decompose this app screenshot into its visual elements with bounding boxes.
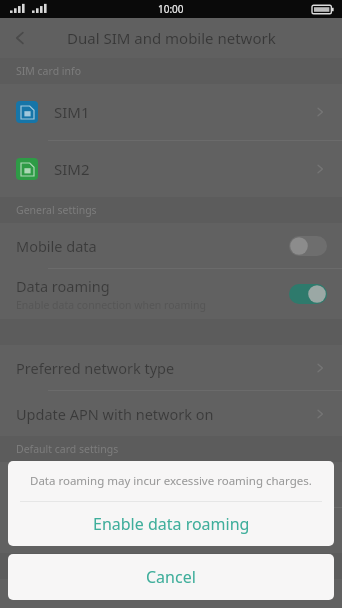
staticText: Ask before dialing (204, 477, 306, 493)
staticText: SIM1 (54, 102, 90, 122)
staticText: Enable data roaming (93, 513, 250, 535)
staticText: Data roaming (16, 276, 110, 296)
staticText: 218.76B (260, 586, 306, 602)
staticText: Preferred network type (16, 358, 175, 378)
button[interactable]: Enable data roaming (8, 502, 334, 546)
staticText: Cancel (146, 566, 196, 588)
button[interactable]: Preferred network type (0, 345, 342, 390)
button[interactable]: Cancel (8, 554, 334, 600)
staticText: Data used this month (16, 584, 163, 604)
button[interactable]: Data used this month (0, 579, 342, 608)
button[interactable]: Update APN with network on (0, 391, 342, 436)
staticText: Enable data connection when roaming (16, 298, 206, 312)
button[interactable]: SIM1 (0, 84, 342, 140)
staticText: Mobile data (16, 236, 97, 256)
button[interactable]: SIM2 (0, 141, 342, 197)
staticText: Default card settings (16, 442, 119, 456)
staticText: Update APN with network on (16, 404, 214, 424)
button[interactable] (288, 283, 328, 305)
button[interactable] (288, 235, 328, 257)
staticText: General settings (16, 203, 97, 217)
staticText: SIM card info (16, 64, 81, 78)
staticText: Data roaming may incur excessive roaming… (30, 473, 312, 489)
staticText: Call (16, 475, 41, 495)
button[interactable]: Call (0, 462, 342, 507)
staticText: Dual SIM and mobile network (67, 28, 276, 48)
staticText: SIM2 (54, 159, 90, 179)
button[interactable]: Internet (0, 508, 342, 553)
staticText: 10:00 (158, 2, 184, 16)
button[interactable]: Data roaming (0, 269, 342, 319)
button[interactable]: Mobile data (0, 223, 342, 268)
